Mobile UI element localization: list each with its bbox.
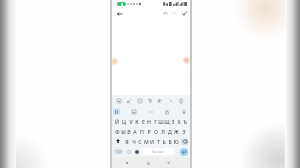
button[interactable]: ?123 xyxy=(113,148,123,155)
button[interactable]: Recents xyxy=(123,159,131,167)
button[interactable]: Русский xyxy=(141,148,175,155)
staticText: Ч xyxy=(132,138,136,145)
staticText: Н xyxy=(147,118,151,125)
button[interactable]: Clipboard history xyxy=(129,107,138,116)
button[interactable]: Б xyxy=(167,136,173,146)
staticText: С xyxy=(138,138,142,145)
button[interactable]: Redo xyxy=(170,9,179,18)
staticText: Ц xyxy=(122,118,126,125)
staticText: Р xyxy=(147,128,151,135)
button[interactable]: Back xyxy=(164,159,172,167)
button[interactable]: М xyxy=(143,136,149,146)
staticText: В xyxy=(127,128,131,135)
button[interactable]: One handed mode xyxy=(162,107,171,116)
button[interactable]: Ф xyxy=(114,126,120,136)
button[interactable]: Щ xyxy=(164,116,170,126)
staticText: К xyxy=(135,118,139,125)
button[interactable]: Г xyxy=(152,116,158,126)
button[interactable]: О xyxy=(152,126,159,136)
button[interactable]: Undo xyxy=(161,9,170,18)
button[interactable]: Text selection xyxy=(146,107,155,116)
staticText: М xyxy=(144,138,149,145)
staticText: Ф xyxy=(115,128,120,135)
button[interactable]: Home xyxy=(144,159,152,167)
button[interactable]: А xyxy=(132,126,138,136)
button[interactable]: Й xyxy=(113,116,120,126)
button[interactable]: Hide keyboard xyxy=(179,107,188,116)
button[interactable]: Search xyxy=(166,96,175,105)
button[interactable]: Done xyxy=(180,9,189,18)
staticText: Щ xyxy=(164,118,170,125)
staticText: . xyxy=(177,149,179,154)
staticText: У xyxy=(129,118,133,125)
button[interactable]: Enter xyxy=(180,148,188,156)
staticText: Ш xyxy=(158,118,164,125)
button[interactable]: У xyxy=(127,116,134,126)
staticText: Ы xyxy=(121,128,126,135)
button[interactable]: Sticker xyxy=(124,96,133,105)
staticText: Л xyxy=(161,128,165,135)
button[interactable]: Э xyxy=(180,126,187,136)
staticText: Д xyxy=(168,128,172,135)
button[interactable]: Ъ xyxy=(182,116,188,126)
staticText: З xyxy=(171,118,175,125)
button[interactable]: С xyxy=(137,136,143,146)
staticText: Й xyxy=(115,118,119,125)
staticText: А xyxy=(133,128,137,135)
button[interactable]: И xyxy=(149,136,155,146)
staticText: Ь xyxy=(162,138,166,145)
button[interactable]: К xyxy=(134,116,140,126)
button[interactable]: Image xyxy=(135,96,144,105)
button[interactable]: Т xyxy=(155,136,161,146)
staticText: И xyxy=(150,138,154,145)
button[interactable]: Л xyxy=(159,126,166,136)
button[interactable]: Ь xyxy=(161,136,167,146)
staticText: Я xyxy=(125,138,129,145)
button[interactable]: Keyboard settings xyxy=(112,107,121,116)
button[interactable]: Ш xyxy=(158,116,164,126)
button[interactable]: З xyxy=(170,116,176,126)
button[interactable]: Back xyxy=(114,9,124,19)
button[interactable]: Е xyxy=(140,116,146,126)
button[interactable]: Ч xyxy=(130,136,137,146)
button[interactable]: Translate xyxy=(145,96,154,105)
button[interactable]: Ж xyxy=(173,126,180,136)
staticText: Русский xyxy=(152,150,164,154)
button[interactable]: Ц xyxy=(120,116,127,126)
button[interactable]: More xyxy=(176,96,185,105)
button[interactable]: Х xyxy=(176,116,182,126)
button[interactable]: Н xyxy=(146,116,152,126)
staticText: ?123 xyxy=(115,150,122,154)
button[interactable]: Emoji xyxy=(125,148,132,155)
staticText: Ж xyxy=(174,128,179,135)
button[interactable]: В xyxy=(126,126,132,136)
staticText: П xyxy=(140,128,144,135)
staticText: О xyxy=(154,128,158,135)
staticText: Б xyxy=(168,138,172,145)
staticText: Ъ xyxy=(183,118,187,125)
button[interactable]: Р xyxy=(145,126,152,136)
staticText: Э xyxy=(182,128,186,135)
button[interactable]: Я xyxy=(123,136,130,146)
button[interactable]: Clipboard xyxy=(114,96,123,105)
button[interactable]: Ы xyxy=(120,126,126,136)
button[interactable]: Period xyxy=(175,146,180,157)
staticText: Т xyxy=(157,138,160,145)
button[interactable]: Backspace xyxy=(179,136,189,146)
button[interactable]: Shift xyxy=(112,136,123,146)
button[interactable]: Ю xyxy=(173,136,179,146)
button[interactable]: П xyxy=(138,126,145,136)
staticText: Х xyxy=(177,118,181,125)
button[interactable]: Theme xyxy=(155,96,164,105)
staticText: Е xyxy=(142,118,145,125)
button[interactable]: Microphone xyxy=(133,148,140,155)
button[interactable]: Д xyxy=(166,126,173,136)
staticText: Г xyxy=(154,118,157,125)
staticText: Ю xyxy=(173,138,179,145)
